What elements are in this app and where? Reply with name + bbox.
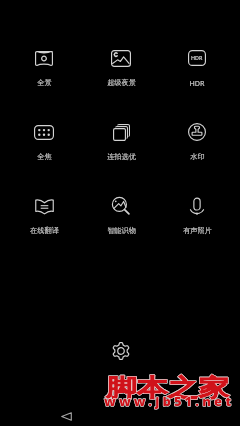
- button[interactable]: Settings: [110, 340, 131, 361]
- button[interactable]: 水印: [165, 115, 229, 165]
- staticText: 连拍选优: [107, 152, 136, 161]
- staticText: 全焦: [37, 152, 52, 161]
- staticText: HDR: [189, 78, 205, 88]
- button[interactable]: HDR: [165, 41, 229, 91]
- button[interactable]: 超级夜景: [89, 41, 153, 91]
- staticText: 水印: [190, 152, 205, 161]
- staticText: 智能识物: [107, 226, 136, 235]
- button[interactable]: Back: [54, 404, 78, 426]
- staticText: HDR: [191, 54, 203, 61]
- staticText: 全景: [37, 78, 52, 87]
- staticText: 在线翻译: [30, 226, 59, 235]
- button[interactable]: 全景: [12, 41, 76, 91]
- staticText: www.jb51.net: [104, 392, 235, 410]
- button[interactable]: 有声照片: [165, 189, 229, 239]
- button[interactable]: 在线翻译: [12, 189, 76, 239]
- button[interactable]: 连拍选优: [89, 115, 153, 165]
- staticText: 脚本之家: [106, 373, 229, 403]
- staticText: 超级夜景: [107, 78, 136, 87]
- button[interactable]: 全焦: [12, 115, 76, 165]
- button[interactable]: 智能识物: [89, 189, 153, 239]
- staticText: www.jb51.net: [104, 392, 235, 410]
- staticText: 脚本之家: [106, 373, 229, 403]
- staticText: 有声照片: [183, 226, 212, 235]
